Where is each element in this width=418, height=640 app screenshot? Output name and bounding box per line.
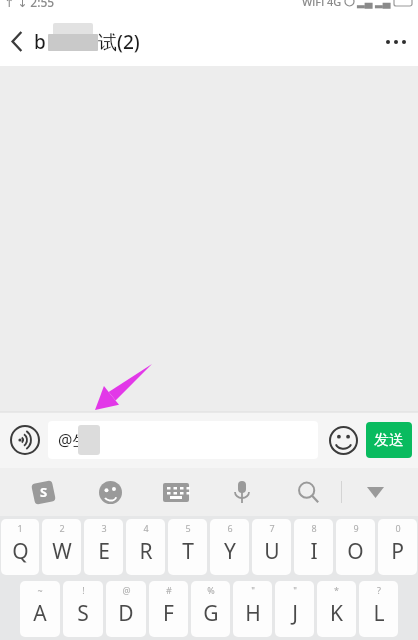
staticText: R (139, 537, 153, 566)
button[interactable]: 8 (294, 519, 333, 575)
staticText: 发送 (374, 431, 404, 450)
staticText: # (166, 584, 172, 596)
button[interactable]: 7 (252, 519, 291, 575)
staticText: A (33, 599, 47, 628)
button[interactable]: ! (63, 581, 103, 637)
staticText: 2 (59, 522, 65, 534)
button[interactable]: Search (275, 468, 341, 516)
staticText: 6 (227, 522, 233, 534)
staticText: 5 (185, 522, 191, 534)
button[interactable]: Input method (10, 468, 77, 516)
staticText: T (182, 537, 194, 566)
staticText: 9 (353, 522, 359, 534)
staticText: E (98, 537, 110, 566)
button[interactable]: Voice typing (209, 468, 275, 516)
staticText: K (330, 599, 343, 628)
staticText: 8 (311, 522, 317, 534)
staticText: " (251, 584, 255, 596)
button[interactable]: ? (359, 581, 398, 637)
staticText: J (292, 599, 298, 628)
staticText: ? (377, 584, 381, 596)
button[interactable]: * (317, 581, 356, 637)
staticText: S (40, 483, 48, 501)
button[interactable]: 9 (336, 519, 375, 575)
staticText: % (207, 584, 215, 596)
button[interactable]: 6 (210, 519, 249, 575)
staticText: P (391, 537, 404, 566)
button[interactable]: " (275, 581, 314, 637)
staticText: L (373, 599, 385, 628)
staticText: b (34, 29, 46, 55)
staticText: 4 (143, 522, 149, 534)
button[interactable]: ~ (20, 581, 60, 637)
button[interactable]: 发送 (366, 422, 412, 458)
button[interactable]: " (233, 581, 272, 637)
button[interactable]: More options (374, 17, 418, 66)
button[interactable]: 1 (1, 519, 39, 575)
staticText: F (163, 599, 174, 628)
staticText: 7 (269, 522, 275, 534)
staticText: " (293, 584, 297, 596)
button[interactable]: Voice input (6, 421, 44, 459)
staticText: ! (82, 584, 85, 596)
staticText: U (264, 537, 280, 566)
button[interactable]: 5 (168, 519, 207, 575)
button[interactable]: Keyboard layout (143, 468, 209, 516)
staticText: ↑ ↓ 2:55 (4, 0, 55, 10)
staticText: ▂▄ ▂▄ (357, 0, 391, 9)
staticText: D (118, 599, 134, 628)
button[interactable]: % (191, 581, 230, 637)
staticText: G (203, 599, 219, 628)
staticText: Y (224, 537, 236, 566)
button[interactable]: 2 (42, 519, 81, 575)
button[interactable]: Hide keyboard (342, 468, 408, 516)
staticText: S (77, 599, 89, 628)
staticText: ~ (37, 584, 43, 596)
staticText: 1 (17, 522, 23, 534)
staticText: 0 (395, 522, 401, 534)
staticText: Q (12, 537, 29, 566)
staticText: 试(2) (98, 29, 140, 55)
button[interactable]: 3 (84, 519, 123, 575)
staticText: O (347, 537, 364, 566)
button[interactable]: 0 (378, 519, 417, 575)
button[interactable]: @生 (48, 421, 318, 459)
staticText: W (52, 537, 72, 566)
button[interactable]: # (149, 581, 188, 637)
button[interactable]: Emoji (324, 421, 362, 459)
button[interactable]: Emoticons (77, 468, 143, 516)
staticText: 3 (101, 522, 107, 534)
staticText: WiFi 4G (302, 0, 342, 9)
button[interactable]: Back (0, 17, 34, 66)
button[interactable]: 4 (126, 519, 165, 575)
staticText: @ (122, 584, 131, 596)
staticText: I (310, 537, 318, 566)
staticText: H (245, 599, 261, 628)
button[interactable]: @ (106, 581, 146, 637)
staticText: @生 (58, 429, 89, 451)
staticText: * (334, 584, 339, 596)
